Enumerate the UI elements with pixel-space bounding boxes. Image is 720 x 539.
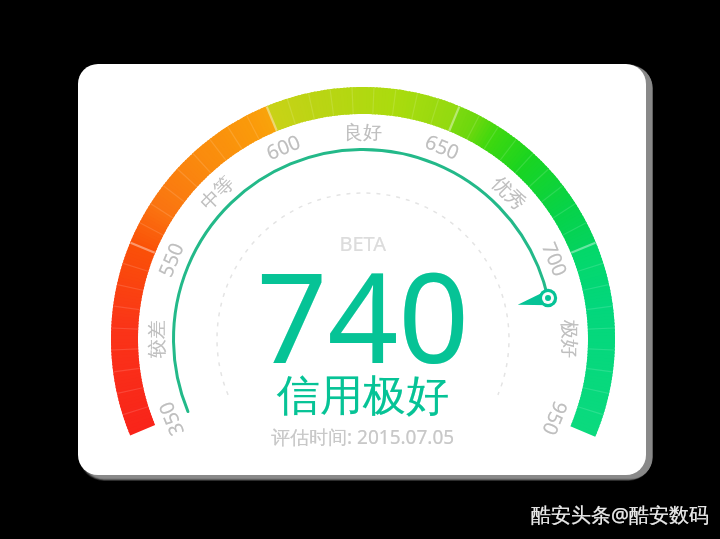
button[interactable] — [0, 0, 720, 539]
